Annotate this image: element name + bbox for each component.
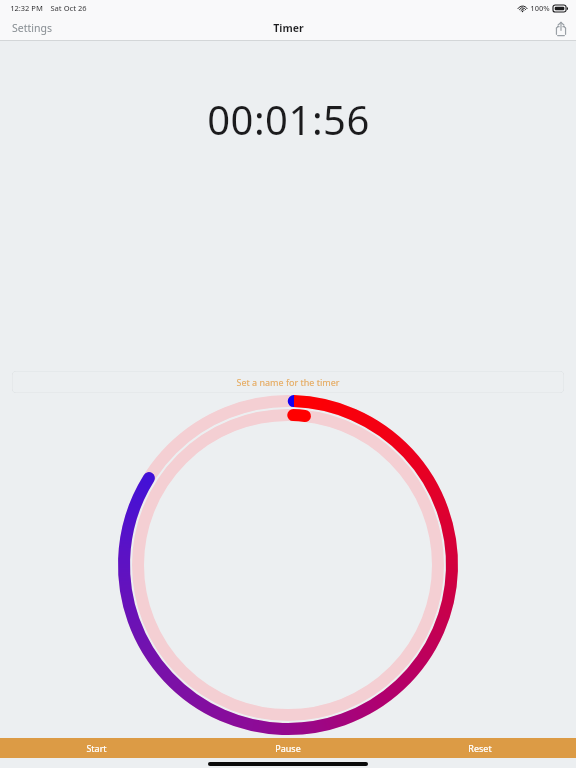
staticText: 12:32 PM <box>10 3 43 13</box>
button[interactable]: Set a name for the timer <box>12 371 564 393</box>
staticText: Start <box>86 742 107 754</box>
staticText: Timer <box>273 21 304 35</box>
staticText: Settings <box>12 21 52 35</box>
staticText: Sat Oct 26 <box>50 3 87 13</box>
staticText: 100% <box>530 3 550 13</box>
staticText: Reset <box>468 742 492 754</box>
button[interactable]: Pause <box>192 738 384 758</box>
staticText: 00:01:56 <box>207 92 370 146</box>
button[interactable]: Start <box>0 738 192 758</box>
staticText: Set a name for the timer <box>236 376 340 388</box>
staticText: Pause <box>275 742 301 754</box>
button[interactable]: Share <box>546 15 576 41</box>
button[interactable]: Settings <box>0 15 64 41</box>
button[interactable]: Reset <box>384 738 576 758</box>
